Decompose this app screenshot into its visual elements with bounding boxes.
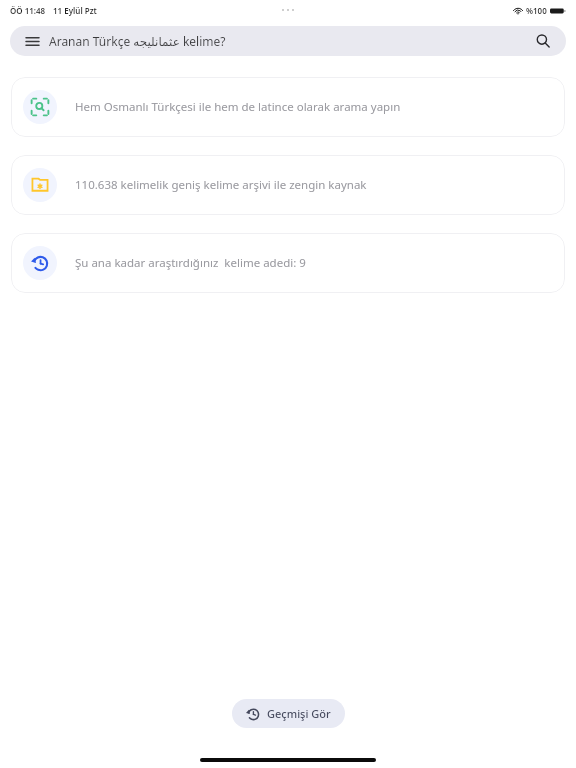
other: Geçmiş (23, 246, 57, 280)
button[interactable]: Arşiv (11, 155, 565, 215)
staticText: Aranan Türkçe عثمانليجه kelime? (49, 33, 226, 49)
staticText: Şu ana kadar araştırdığınız kelime adedi… (75, 255, 306, 271)
button[interactable]: Menu (23, 32, 41, 50)
button[interactable]: Search (533, 31, 553, 51)
staticText: %100 (526, 5, 547, 16)
other: Arşiv (23, 168, 57, 202)
staticText: 11 Eylül Pzt (53, 5, 97, 16)
button[interactable]: Arama (11, 77, 565, 137)
button[interactable]: Geçmişi Gör (232, 699, 345, 728)
staticText: ÖÖ 11:48 (10, 5, 46, 16)
button[interactable]: Geçmiş (11, 233, 565, 293)
other: Arama (23, 90, 57, 124)
button[interactable]: Menu (10, 26, 566, 56)
staticText: Hem Osmanlı Türkçesi ile hem de latince … (75, 99, 401, 115)
staticText: Geçmişi Gör (267, 706, 331, 721)
staticText: 110.638 kelimelik geniş kelime arşivi il… (75, 177, 367, 193)
